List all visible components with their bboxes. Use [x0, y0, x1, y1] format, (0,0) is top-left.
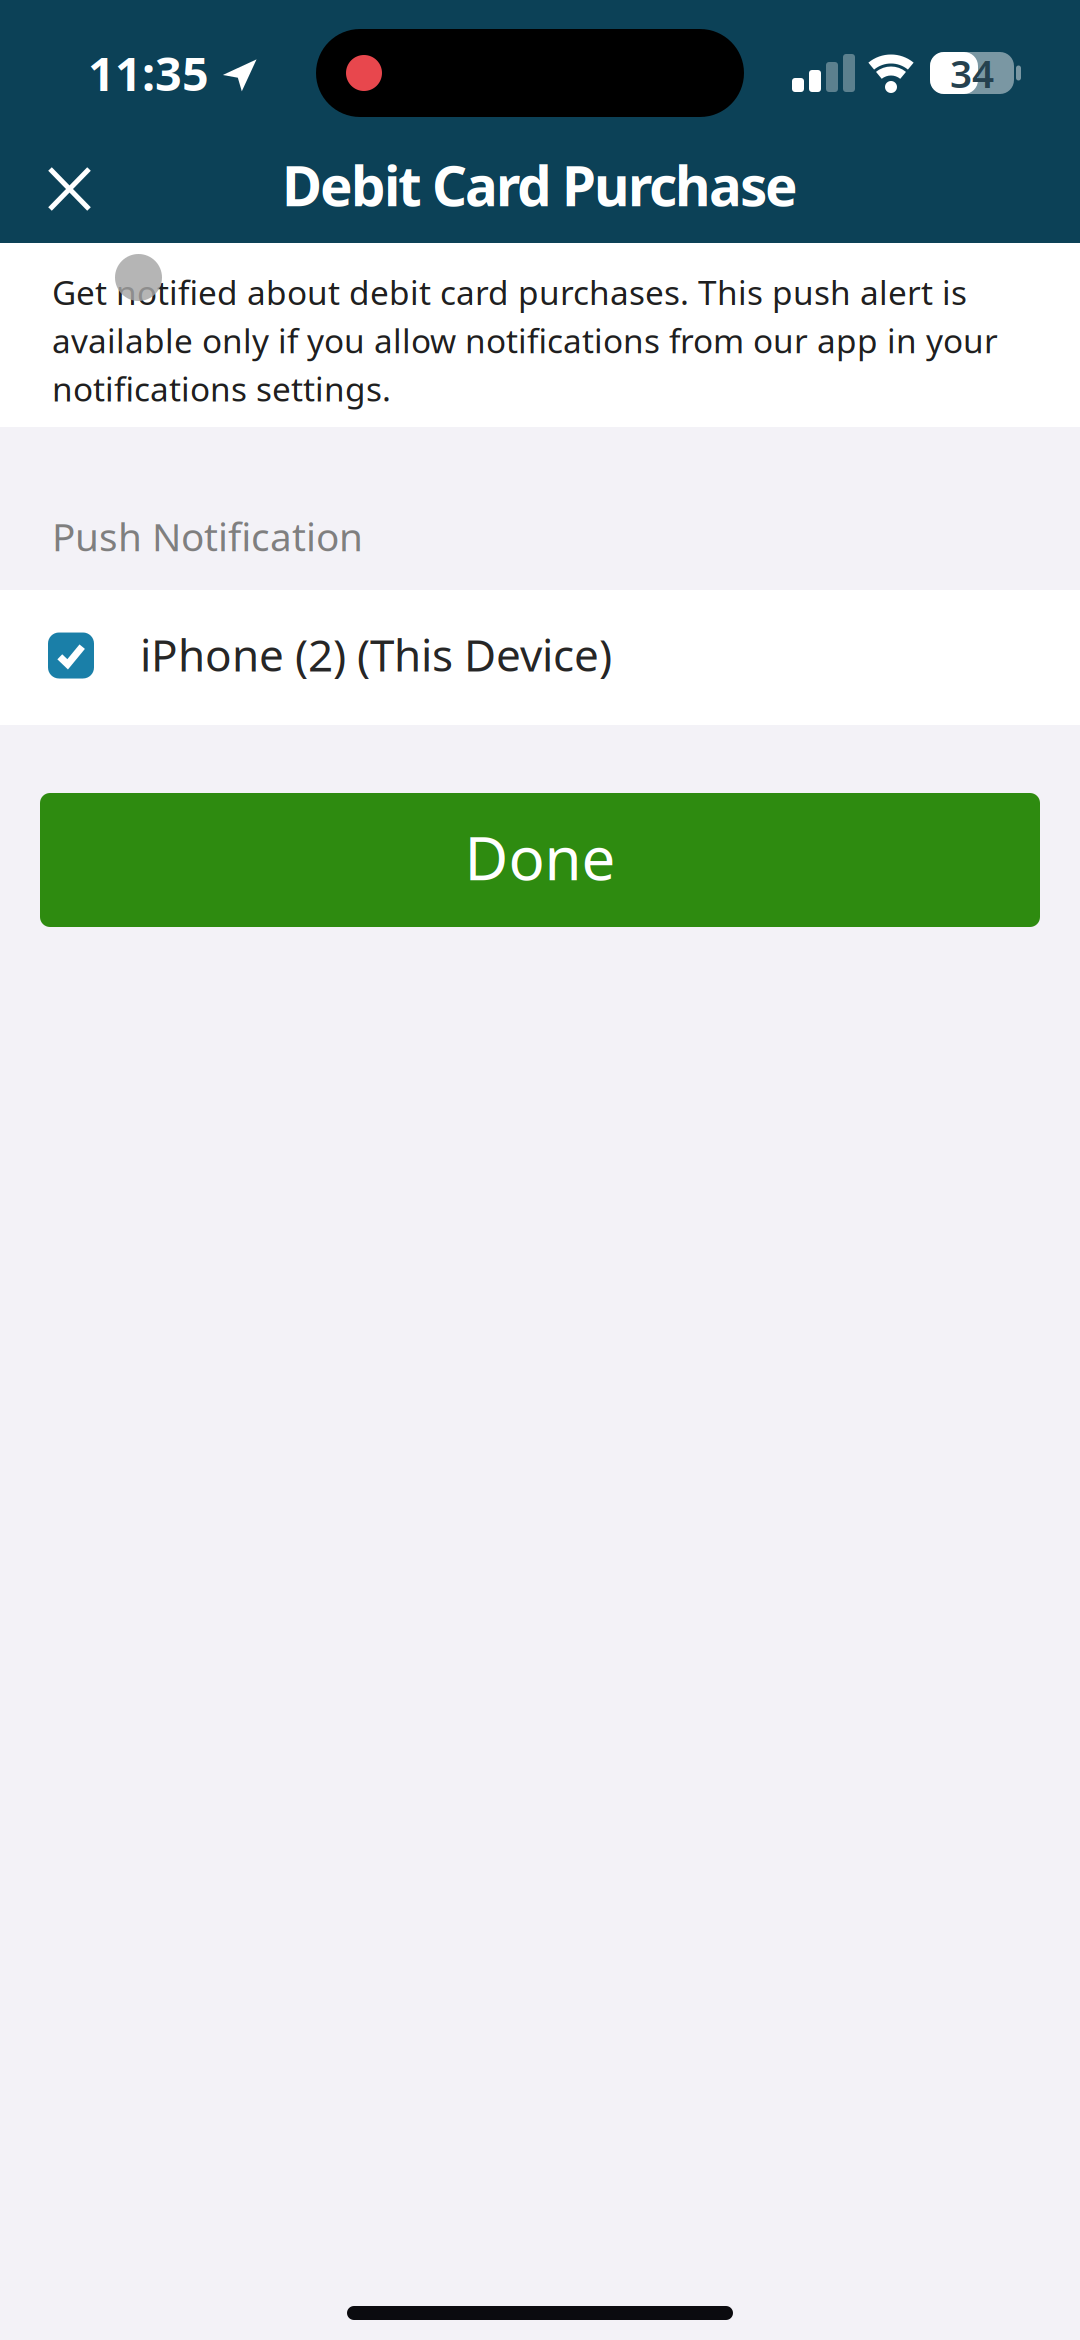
staticText: Debit Card Purchase [282, 149, 798, 221]
button[interactable]: Close [0, 125, 119, 243]
button[interactable]: iPhone (2) (This Device) [0, 590, 1080, 725]
staticText: Done [464, 817, 615, 897]
staticText: 11:35 [88, 42, 209, 104]
staticText: 34 [950, 47, 994, 99]
staticText: iPhone (2) (This Device) [140, 625, 612, 684]
button[interactable]: Done [40, 793, 1040, 927]
staticText: Get notified about debit card purchases.… [52, 270, 998, 411]
staticText: Push Notification [52, 511, 363, 562]
